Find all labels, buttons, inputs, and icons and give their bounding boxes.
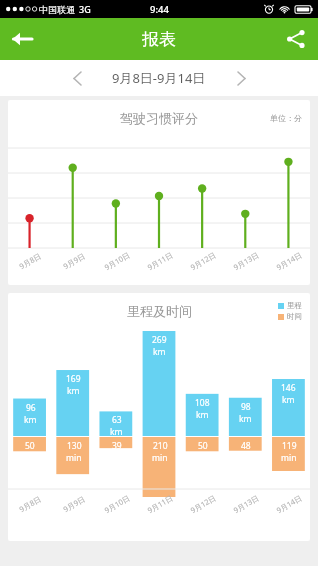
staticText: 108 [195,397,210,409]
staticText: 9月12日 [188,250,218,272]
button[interactable]: 里程及时间 [8,293,310,541]
staticText: 9月14日 [274,493,304,515]
staticText: km [67,385,80,397]
staticText: 9月12日 [188,493,218,515]
staticText: 48 [241,440,251,452]
staticText: 9月13日 [231,250,261,272]
button[interactable]: 驾驶习惯评分 [8,100,310,285]
staticText: 9月8日-9月14日 [112,69,206,87]
staticText: 9月10日 [102,250,132,272]
staticText: 50 [198,440,208,452]
staticText: 9月11日 [145,250,175,272]
staticText: 9月14日 [274,250,304,272]
staticText: min [152,452,168,464]
staticText: 9月8日 [17,494,43,514]
button[interactable]: Previous week [60,61,94,95]
staticText: 里程及时间 [127,303,192,319]
staticText: 96 [26,402,36,414]
staticText: km [196,409,209,421]
staticText: 119 [282,440,297,452]
staticText: 130 [67,440,82,452]
staticText: 169 [66,373,81,385]
staticText: 9月11日 [145,493,175,515]
staticText: km [153,346,166,358]
staticText: km [110,426,123,438]
staticText: 单位：分 [270,113,302,123]
staticText: 9:44 [150,3,169,16]
staticText: 146 [281,382,296,394]
staticText: 报表 [142,29,176,50]
staticText: 中国联通 [39,4,75,15]
button[interactable]: Share [274,18,318,60]
staticText: 9月9日 [61,494,87,514]
staticText: min [281,452,297,464]
staticText: 驾驶习惯评分 [120,110,198,126]
staticText: 39 [112,440,122,452]
staticText: 269 [152,334,167,346]
staticText: 210 [153,440,168,452]
button[interactable]: Back [0,18,44,60]
staticText: km [282,394,295,406]
staticText: 时间 [287,312,302,321]
staticText: min [66,452,82,464]
staticText: 50 [25,440,35,452]
staticText: 3G [79,3,91,15]
staticText: km [24,414,37,426]
staticText: 里程 [287,301,302,310]
staticText: 9月10日 [102,493,132,515]
staticText: 98 [241,401,251,413]
button[interactable]: Next week [224,61,258,95]
staticText: km [239,413,252,425]
staticText: 63 [112,414,122,426]
staticText: 9月13日 [231,493,261,515]
staticText: 9月9日 [61,251,87,271]
staticText: 9月8日 [17,251,43,271]
